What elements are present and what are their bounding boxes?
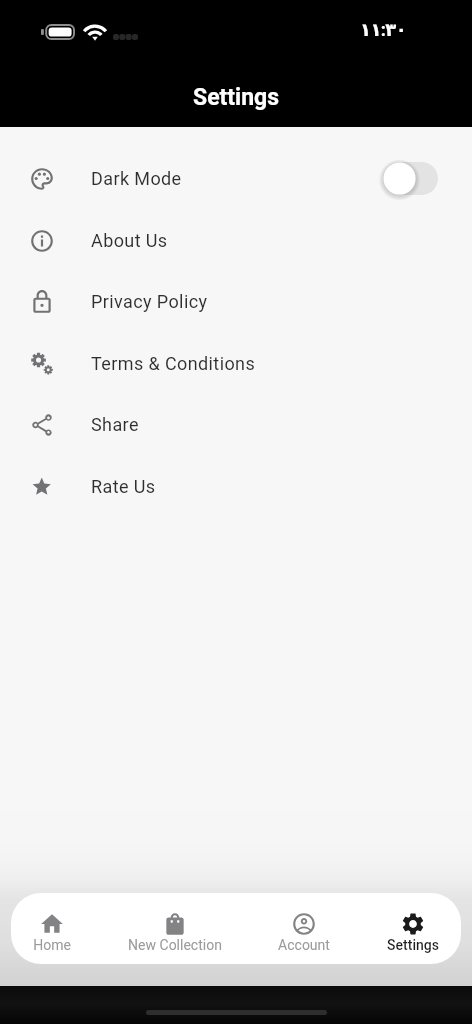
staticText: Settings <box>387 937 439 953</box>
button[interactable]: Share <box>0 394 472 455</box>
staticText: Home <box>33 937 71 953</box>
staticText: About Us <box>91 230 168 251</box>
button[interactable]: Dark mode toggle <box>383 162 438 195</box>
staticText: Dark Mode <box>91 168 182 189</box>
staticText: Privacy Policy <box>91 291 208 312</box>
staticText: Share <box>91 414 139 435</box>
staticText: Settings <box>193 84 280 111</box>
button[interactable]: Settings <box>387 893 439 964</box>
staticText: New Collection <box>128 937 222 953</box>
button[interactable]: Terms & Conditions <box>0 333 472 394</box>
button[interactable]: About Us <box>0 210 472 271</box>
button[interactable]: Dark Mode <box>0 148 472 209</box>
staticText: ١١:٣٠ <box>360 19 407 40</box>
staticText: Terms & Conditions <box>91 353 256 374</box>
button[interactable]: Account <box>278 893 330 964</box>
button[interactable]: Rate Us <box>0 456 472 517</box>
staticText: Account <box>278 937 330 953</box>
button[interactable]: Privacy Policy <box>0 271 472 332</box>
button[interactable]: Home <box>33 893 71 964</box>
button[interactable]: New Collection <box>128 893 222 964</box>
staticText: Rate Us <box>91 476 156 497</box>
